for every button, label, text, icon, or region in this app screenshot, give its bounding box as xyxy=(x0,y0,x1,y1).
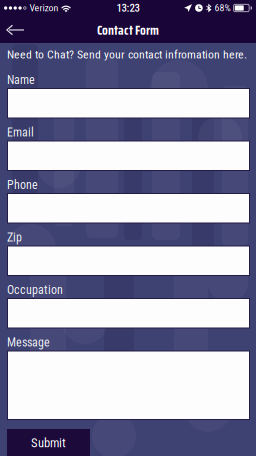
button[interactable]: Back xyxy=(0,17,30,43)
button[interactable]: Zip xyxy=(7,245,250,276)
staticText: 68% xyxy=(215,2,231,14)
button[interactable]: Phone xyxy=(7,193,250,223)
staticText: Verizon xyxy=(29,2,58,14)
staticText: 13:23 xyxy=(116,2,139,14)
staticText: Phone xyxy=(7,178,38,192)
button[interactable]: Submit xyxy=(7,429,90,456)
button[interactable]: Name xyxy=(7,88,250,118)
staticText: Contact Form xyxy=(97,19,159,40)
staticText: Name xyxy=(7,73,35,87)
button[interactable]: Message xyxy=(7,350,250,420)
staticText: Occupation xyxy=(7,283,63,297)
staticText: Message xyxy=(7,335,50,350)
staticText: Email xyxy=(7,125,34,140)
button[interactable]: Occupation xyxy=(7,298,250,328)
staticText: Zip xyxy=(7,230,22,245)
staticText: Submit xyxy=(31,436,66,450)
staticText: Need to Chat? Send your contact infromat… xyxy=(7,48,247,61)
button[interactable]: Email xyxy=(7,140,250,171)
